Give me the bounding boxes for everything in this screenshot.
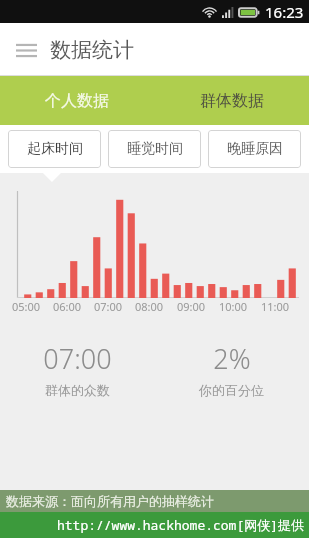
staticText: 睡觉时间 (127, 140, 183, 158)
button[interactable]: 睡觉时间 (108, 130, 201, 168)
button[interactable]: 群体数据 (154, 76, 309, 125)
button[interactable]: 起床时间 (8, 130, 101, 168)
staticText: 晚睡原因 (227, 140, 283, 158)
staticText: 数据来源：面向所有用户的抽样统计 (6, 493, 214, 509)
staticText: 群体数据 (200, 91, 264, 111)
staticText: 10:00 (219, 299, 248, 314)
staticText: http://www.hackhome.com[网侠]提供 (57, 516, 305, 534)
button[interactable]: Menu (9, 33, 43, 67)
staticText: 16:23 (265, 2, 304, 22)
staticText: 07:00 (43, 340, 112, 377)
staticText: 起床时间 (27, 140, 83, 158)
staticText: 11:00 (261, 299, 290, 314)
staticText: 08:00 (135, 299, 164, 314)
staticText: 数据统计 (50, 37, 134, 63)
staticText: 你的百分位 (199, 382, 264, 398)
staticText: 09:00 (177, 299, 206, 314)
staticText: 06:00 (53, 299, 82, 314)
staticText: 群体的众数 (45, 382, 110, 398)
button[interactable]: 晚睡原因 (208, 130, 301, 168)
button[interactable]: 个人数据 (0, 76, 154, 125)
staticText: 07:00 (94, 299, 123, 314)
staticText: 05:00 (12, 299, 41, 314)
staticText: 个人数据 (45, 91, 109, 111)
staticText: 2% (213, 340, 251, 377)
